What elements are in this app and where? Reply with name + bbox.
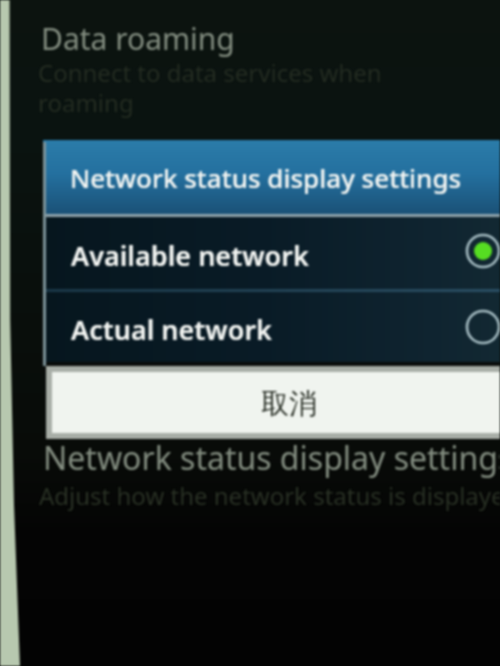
other: Selected bbox=[465, 233, 500, 269]
other: Not selected bbox=[465, 309, 500, 345]
staticText: Adjust how the network status is display… bbox=[39, 479, 500, 512]
button[interactable]: Actual network bbox=[43, 292, 500, 362]
staticText: Network status display settings bbox=[70, 160, 462, 195]
button[interactable]: 取消 bbox=[52, 372, 500, 433]
staticText: Available network bbox=[71, 237, 309, 274]
staticText: Network status display settings bbox=[43, 436, 500, 480]
button[interactable]: Available network bbox=[43, 217, 500, 289]
staticText: Actual network bbox=[71, 311, 272, 348]
staticText: Connect to data services when roaming bbox=[38, 56, 382, 119]
staticText: Data roaming bbox=[41, 18, 235, 59]
staticText: 取消 bbox=[261, 386, 317, 421]
